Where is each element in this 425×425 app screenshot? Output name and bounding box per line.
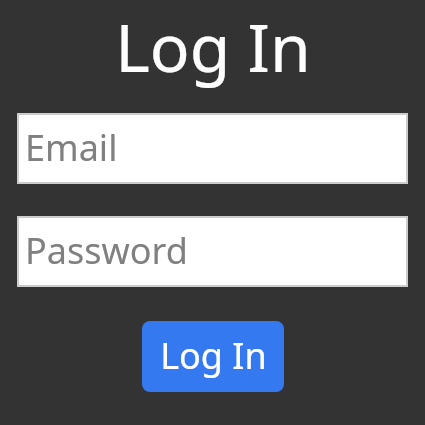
button[interactable]: Email (17, 113, 408, 184)
staticText: Log In (160, 331, 267, 380)
staticText: Email (25, 123, 118, 172)
staticText: Log In (115, 1, 311, 91)
staticText: Password (25, 226, 188, 275)
button[interactable]: Password (17, 216, 408, 287)
button[interactable]: Log In (142, 321, 284, 392)
